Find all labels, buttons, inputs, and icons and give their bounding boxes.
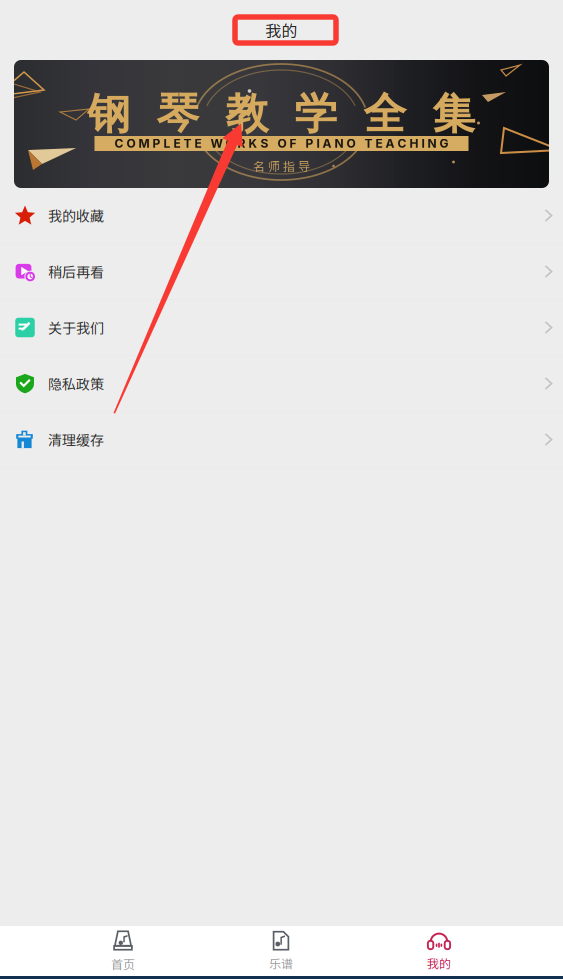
staticText: 我的收藏	[48, 205, 104, 226]
staticText: 清理缓存	[48, 429, 104, 450]
button[interactable]: 清理缓存	[0, 412, 563, 468]
staticText: 关于我们	[48, 317, 104, 338]
button[interactable]: 我的收藏	[0, 188, 563, 244]
staticText: 我的	[427, 954, 451, 972]
staticText: 稍后再看	[48, 261, 104, 282]
staticText: C O M P L E T E W O R K S O F P I A N O …	[114, 136, 448, 151]
staticText: 名 师 指 导	[253, 157, 310, 174]
staticText: 钢 琴 教 学 全 集	[87, 87, 475, 141]
staticText: 乐谱	[269, 954, 293, 972]
staticText: 我的	[265, 18, 297, 42]
button[interactable]: 我的	[360, 927, 518, 975]
button[interactable]: 隐私政策	[0, 356, 563, 412]
staticText: 首页	[111, 955, 135, 973]
button[interactable]: 稍后再看	[0, 244, 563, 300]
button[interactable]: 乐谱	[202, 927, 360, 975]
staticText: 隐私政策	[48, 373, 104, 394]
button[interactable]: 首页	[44, 927, 202, 975]
button[interactable]: 关于我们	[0, 300, 563, 356]
